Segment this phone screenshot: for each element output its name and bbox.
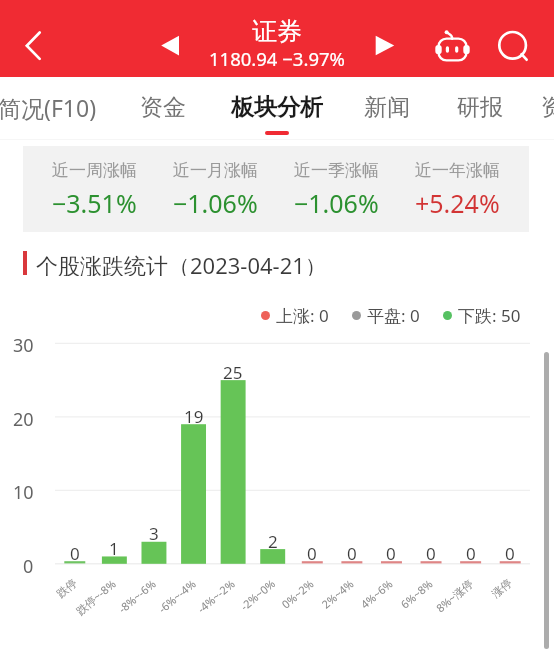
button[interactable]: 资 [492, 78, 554, 137]
staticText: −1.06% [294, 186, 379, 218]
staticText: 资 [541, 93, 554, 122]
button[interactable]: AI assistant [428, 22, 476, 70]
staticText: 30 [13, 333, 34, 357]
staticText: 近一周涨幅 [52, 160, 137, 181]
staticText: -8%~-6% [115, 576, 159, 616]
button[interactable]: Previous stock [152, 28, 188, 64]
staticText: 近一季涨幅 [294, 160, 379, 181]
staticText: 个股涨跌统计（2023-04-21） [36, 250, 327, 276]
staticText: -4%~-2% [194, 576, 238, 616]
staticText: 20 [13, 407, 34, 431]
staticText: 0 [466, 542, 476, 564]
staticText: 板块分析 [231, 93, 323, 122]
staticText: 0 [70, 542, 80, 564]
staticText: 1 [109, 537, 119, 559]
staticText: 19 [184, 405, 204, 427]
staticText: 25 [223, 361, 243, 383]
staticText: 下跌: 50 [458, 304, 521, 327]
button[interactable]: Search [489, 22, 536, 69]
button[interactable]: 板块分析 [217, 78, 337, 137]
staticText: 跌停~-8% [73, 576, 119, 618]
button[interactable]: 简况(F10) [0, 78, 107, 137]
staticText: 3 [149, 522, 159, 544]
button[interactable]: Back [9, 22, 57, 70]
staticText: 0%~2% [278, 576, 317, 611]
staticText: 1180.94 −3.97% [209, 46, 345, 71]
staticText: 简况(F10) [0, 92, 97, 123]
staticText: 0 [505, 542, 515, 564]
staticText: -6%~-4% [155, 576, 199, 616]
staticText: −1.06% [173, 186, 258, 218]
staticText: 跌停 [54, 576, 79, 600]
staticText: −3.51% [52, 186, 137, 218]
staticText: 0 [23, 554, 34, 578]
staticText: 2 [268, 530, 278, 552]
staticText: 10 [13, 480, 34, 504]
staticText: 近一年涨幅 [415, 160, 500, 181]
staticText: 新闻 [364, 93, 410, 122]
staticText: 2%~4% [318, 576, 357, 611]
staticText: 证券 [252, 16, 302, 47]
staticText: 0 [386, 542, 396, 564]
button[interactable]: 新闻 [327, 78, 447, 137]
staticText: 4%~6% [357, 576, 396, 611]
staticText: 0 [426, 542, 436, 564]
button[interactable]: Next stock [367, 28, 403, 64]
staticText: 6%~8% [397, 576, 436, 611]
staticText: +5.24% [415, 186, 500, 218]
staticText: 8%~涨停 [433, 576, 476, 615]
staticText: 近一月涨幅 [173, 160, 258, 181]
staticText: 上涨: 0 [276, 304, 329, 327]
staticText: -2%~0% [237, 576, 278, 613]
button[interactable]: 研报 [420, 78, 540, 137]
staticText: 涨停 [489, 576, 514, 600]
staticText: 研报 [457, 93, 503, 122]
button[interactable]: 资金 [103, 78, 223, 137]
staticText: 0 [307, 542, 317, 564]
staticText: 平盘: 0 [367, 304, 420, 327]
staticText: 资金 [140, 93, 186, 122]
staticText: 0 [347, 542, 357, 564]
